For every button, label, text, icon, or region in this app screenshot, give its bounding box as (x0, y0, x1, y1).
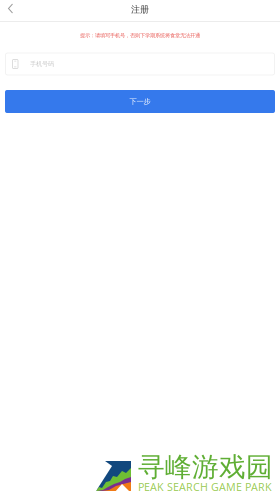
staticText: 下一步 (129, 97, 150, 106)
button[interactable]: 下一步 (5, 90, 275, 113)
staticText: 手机号码 (30, 60, 54, 68)
staticText: 注册 (131, 4, 149, 15)
staticText: 寻峰游戏园 (138, 450, 273, 484)
button[interactable]: 返回 (3, 2, 19, 18)
staticText: PEAK SEARCH GAME PARK (138, 479, 272, 494)
staticText: 提示：请填写手机号，否则下学期系统将食堂无法开通 (80, 32, 200, 39)
